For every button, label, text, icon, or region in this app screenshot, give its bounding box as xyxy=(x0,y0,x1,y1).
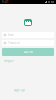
staticText: Email xyxy=(8,33,14,37)
button[interactable]: Forgot? xyxy=(4,59,14,62)
staticText: Forgot? xyxy=(4,59,14,62)
staticText: LOG IN xyxy=(23,50,32,54)
staticText: 9:41 xyxy=(2,0,9,4)
staticText: Password xyxy=(8,41,20,45)
button[interactable]: Sign up xyxy=(14,88,25,92)
button[interactable]: LOG IN xyxy=(2,48,54,56)
staticText: Sign up xyxy=(14,88,25,92)
